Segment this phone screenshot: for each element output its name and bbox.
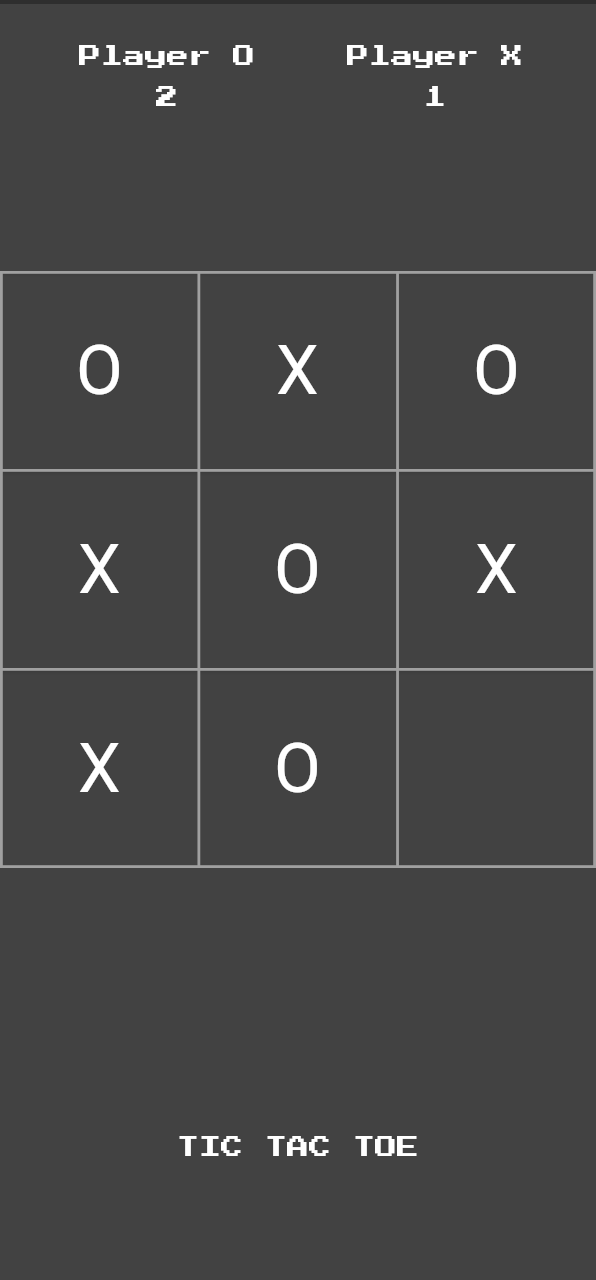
staticText: Player X (347, 46, 524, 68)
staticText: X (78, 729, 121, 809)
button[interactable]: Cell marked O (0, 271, 198, 470)
staticText: TIC TAC TOE (177, 1137, 420, 1159)
button[interactable]: Cell marked O (198, 669, 397, 868)
staticText: 1 (424, 87, 447, 109)
button[interactable]: Cell marked O (198, 470, 397, 669)
staticText: O (274, 729, 321, 809)
button[interactable]: Empty cell (397, 669, 596, 868)
staticText: X (276, 331, 319, 411)
staticText: 2 (156, 87, 179, 109)
button[interactable]: Cell marked X (198, 271, 397, 470)
staticText: O (76, 331, 123, 411)
button[interactable]: Cell marked O (397, 271, 596, 470)
staticText: X (475, 530, 518, 610)
button[interactable]: Cell marked X (0, 470, 198, 669)
staticText: X (78, 530, 121, 610)
staticText: O (473, 331, 520, 411)
button[interactable]: Cell marked X (397, 470, 596, 669)
button[interactable]: Cell marked X (0, 669, 198, 868)
button[interactable]: Player O (79, 46, 256, 109)
staticText: O (274, 530, 321, 610)
staticText: Player O (79, 46, 256, 68)
button[interactable]: Player X (347, 46, 524, 109)
